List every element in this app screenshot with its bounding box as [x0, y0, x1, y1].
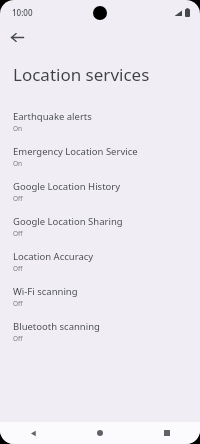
button[interactable]: Back — [0, 422, 66, 444]
staticText: Location Accuracy — [13, 250, 94, 263]
staticText: Google Location Sharing — [13, 215, 123, 228]
staticText: On — [13, 124, 23, 133]
staticText: 10:00 — [12, 7, 33, 18]
staticText: Location services — [13, 63, 150, 86]
staticText: Off — [13, 229, 23, 238]
button[interactable]: Emergency Location Service — [0, 140, 200, 175]
staticText: Wi-Fi scanning — [13, 285, 78, 298]
button[interactable]: Earthquake alerts — [0, 105, 200, 140]
button[interactable]: Bluetooth scanning — [0, 315, 200, 350]
staticText: Emergency Location Service — [13, 145, 138, 158]
staticText: Bluetooth scanning — [13, 320, 100, 333]
staticText: Off — [13, 194, 23, 203]
staticText: Off — [13, 299, 23, 308]
button[interactable]: Home — [66, 422, 133, 444]
button[interactable]: Wi-Fi scanning — [0, 280, 200, 315]
staticText: Off — [13, 264, 23, 273]
button[interactable]: Back — [5, 25, 29, 49]
staticText: Google Location History — [13, 180, 121, 193]
button[interactable]: Location Accuracy — [0, 245, 200, 280]
staticText: Off — [13, 334, 23, 343]
button[interactable]: Google Location Sharing — [0, 210, 200, 245]
button[interactable]: Google Location History — [0, 175, 200, 210]
button[interactable]: Recent apps — [133, 422, 200, 444]
staticText: On — [13, 159, 23, 168]
staticText: Earthquake alerts — [13, 110, 92, 123]
